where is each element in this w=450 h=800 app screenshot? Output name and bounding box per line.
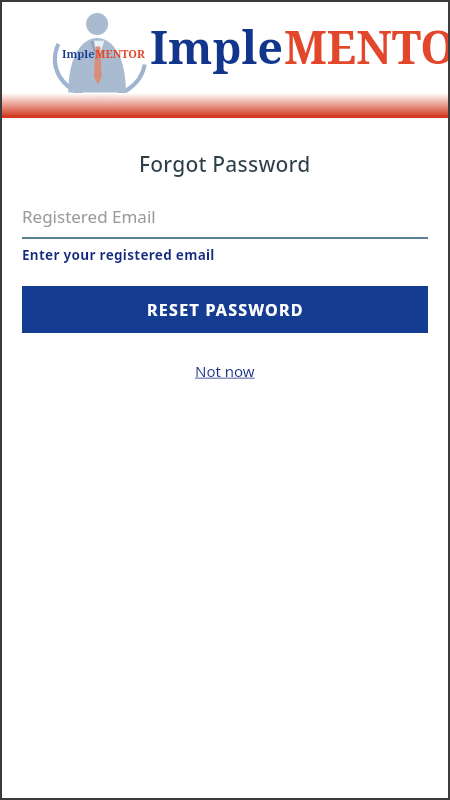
staticText: Imple: [150, 16, 284, 77]
staticText: MENTOR: [95, 46, 145, 61]
other: ImpleMENTOR logo: [52, 6, 148, 96]
staticText: Imple: [62, 46, 95, 61]
button[interactable]: Not now: [195, 361, 255, 381]
staticText: Enter your registered email: [22, 246, 215, 264]
staticText: MENTOR: [284, 16, 450, 77]
staticText: RESET PASSWORD: [147, 299, 304, 321]
button[interactable]: Registered Email: [22, 205, 428, 239]
staticText: Registered Email: [22, 205, 156, 228]
button[interactable]: RESET PASSWORD: [22, 286, 428, 333]
staticText: Not now: [195, 361, 255, 381]
staticText: Forgot Password: [139, 150, 311, 179]
